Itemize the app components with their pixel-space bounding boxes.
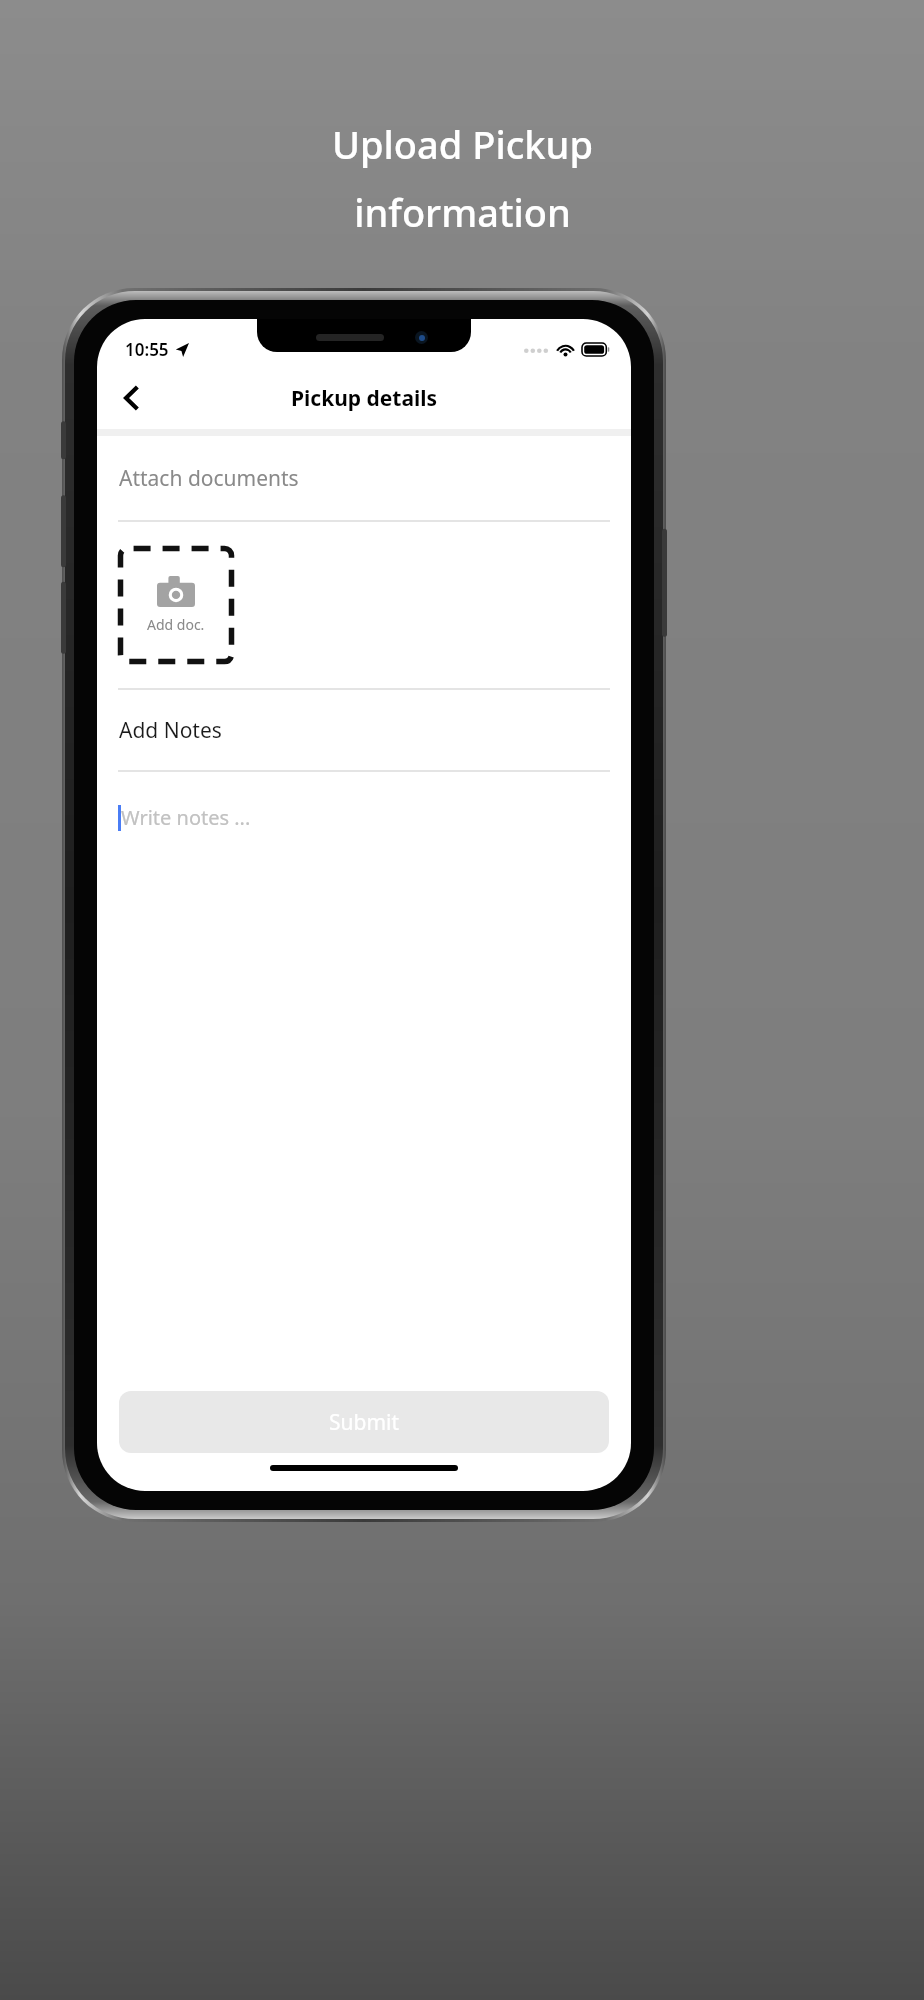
button[interactable]: Attach documents bbox=[97, 436, 631, 520]
staticText: Write notes ... bbox=[121, 804, 251, 831]
staticText: Submit bbox=[329, 1408, 400, 1437]
staticText: information bbox=[354, 186, 571, 238]
staticText: Upload Pickup bbox=[332, 118, 593, 170]
button[interactable]: Add doc. bbox=[119, 547, 233, 663]
button[interactable]: Add Notes bbox=[97, 690, 631, 770]
staticText: Attach documents bbox=[119, 464, 299, 493]
staticText: 10:55 bbox=[125, 338, 169, 361]
staticText: Pickup details bbox=[291, 384, 438, 413]
staticText: Add Notes bbox=[119, 716, 222, 745]
button[interactable]: Write notes ... bbox=[97, 772, 631, 1391]
staticText: Add doc. bbox=[147, 615, 205, 634]
button[interactable]: Back bbox=[107, 374, 155, 422]
